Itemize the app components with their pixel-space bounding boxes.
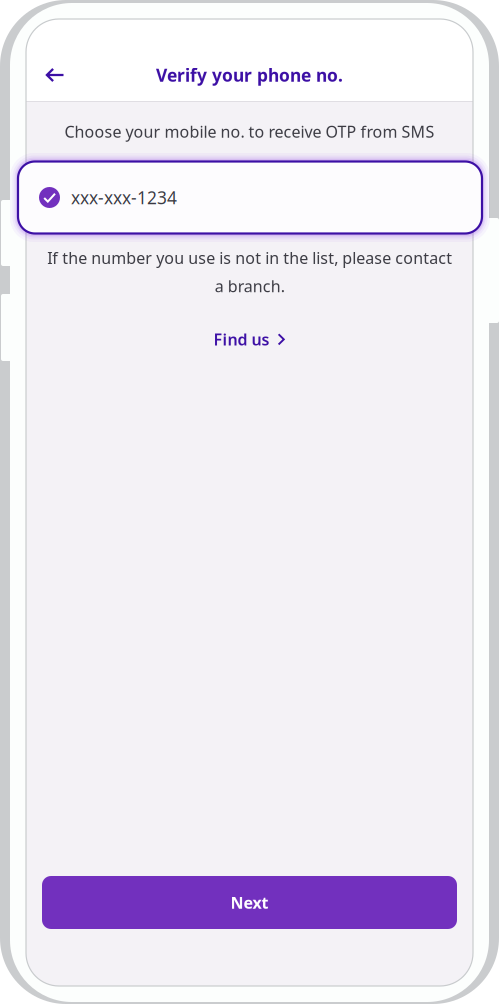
staticText: Choose your mobile no. to receive OTP fr…: [64, 121, 434, 142]
button[interactable]: xxx-xxx-1234: [10, 153, 490, 242]
staticText: xxx-xxx-1234: [71, 186, 177, 209]
button[interactable]: Find us: [201, 322, 297, 357]
staticText: If the number you use is not in the list…: [47, 247, 452, 297]
staticText: Verify your phone no.: [156, 63, 343, 86]
staticText: Find us: [213, 329, 269, 350]
staticText: Next: [230, 892, 268, 913]
button[interactable]: Next: [42, 876, 457, 929]
button[interactable]: Back: [31, 53, 79, 97]
